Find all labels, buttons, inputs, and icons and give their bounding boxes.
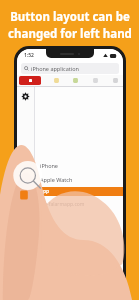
button[interactable]: app <box>35 187 123 196</box>
button[interactable]: Tab <box>92 77 99 84</box>
button[interactable]: Tab <box>72 77 79 84</box>
staticText: iPhone <box>40 162 58 169</box>
button[interactable]: iPhone <box>35 161 123 169</box>
button[interactable]: Apple Watch <box>35 175 123 183</box>
staticText: app <box>40 188 50 195</box>
button[interactable]: iPhone application <box>21 63 119 74</box>
button[interactable]: Settings <box>21 92 30 101</box>
staticText: Button layout can be <box>10 9 130 25</box>
button[interactable]: Selected tab <box>19 76 41 85</box>
button[interactable]: Tab <box>112 77 119 84</box>
staticText: Apple Watch <box>40 176 73 183</box>
staticText: changed for left hand <box>8 26 132 42</box>
button[interactable]: Tab <box>53 77 60 84</box>
staticText: iPhone application <box>31 65 79 72</box>
staticText: 1:52 <box>24 52 34 59</box>
staticText: life-falarmapp.com <box>40 201 85 208</box>
